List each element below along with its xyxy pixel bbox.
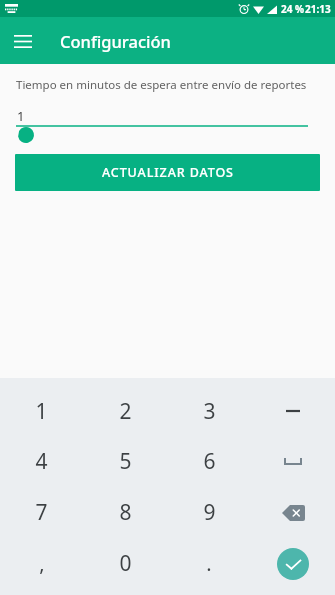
staticText: 1 [35,397,48,426]
button[interactable]: ACTUALIZAR DATOS [15,154,320,191]
staticText: 6 [203,447,216,476]
staticText: 5 [119,447,132,476]
staticText: , [39,550,45,577]
button[interactable]: 7 [0,487,83,538]
button[interactable]: 4 [0,436,83,487]
staticText: 2 [119,397,132,426]
staticText: 21:13 [305,2,331,16]
button[interactable]: 6 [167,436,251,487]
button[interactable]: . [167,538,251,589]
staticText: Configuración [60,30,171,52]
staticText: Tiempo en minutos de espera entre envío … [16,77,307,93]
staticText: 8 [119,498,132,527]
staticText: 4 [35,447,48,476]
staticText: 9 [203,498,216,527]
staticText: 1 [17,107,25,125]
button[interactable]: 1 [0,106,335,142]
staticText: 3 [203,397,216,426]
button[interactable]: Space [251,436,335,487]
staticText: 24 % [281,2,305,16]
button[interactable]: 5 [83,436,167,487]
button[interactable]: 8 [83,487,167,538]
button[interactable]: 1 [0,386,83,436]
button[interactable]: , [0,538,83,589]
staticText: 0 [119,549,132,578]
button[interactable]: Open navigation menu [6,24,40,58]
button[interactable]: 3 [167,386,251,436]
staticText: ACTUALIZAR DATOS [102,164,234,181]
staticText: . [206,550,212,577]
staticText: 7 [35,498,48,527]
button[interactable]: 9 [167,487,251,538]
button[interactable]: Backspace [251,487,335,538]
button[interactable]: 0 [83,538,167,589]
button[interactable]: Dash [251,386,335,436]
button[interactable]: Done [251,538,335,589]
button[interactable]: 2 [83,386,167,436]
